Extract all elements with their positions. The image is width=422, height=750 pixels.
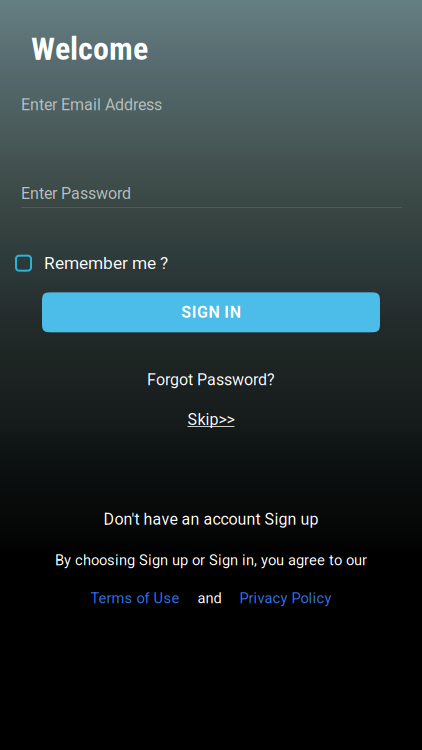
button[interactable]: SIGN IN: [42, 292, 380, 332]
button[interactable]: Don't have an account Sign up: [0, 510, 422, 529]
staticText: Skip>>: [187, 410, 234, 429]
staticText: Welcome: [31, 30, 148, 67]
staticText: Privacy Policy: [239, 590, 331, 607]
button[interactable]: Remember me ?: [0, 253, 422, 273]
button[interactable]: Enter Email Address: [0, 77, 422, 136]
button[interactable]: Enter Password: [0, 165, 422, 226]
button[interactable]: Forgot Password?: [0, 370, 422, 389]
staticText: SIGN IN: [181, 303, 241, 322]
staticText: Remember me ?: [44, 253, 168, 273]
staticText: By choosing Sign up or Sign in, you agre…: [55, 552, 367, 569]
staticText: and: [197, 590, 221, 607]
staticText: Forgot Password?: [147, 370, 275, 389]
button[interactable]: Terms of Use: [90, 590, 179, 607]
staticText: Enter Password: [21, 184, 131, 203]
button[interactable]: Privacy Policy: [239, 590, 331, 607]
staticText: Don't have an account Sign up: [103, 510, 318, 529]
staticText: Enter Email Address: [21, 95, 162, 114]
staticText: Terms of Use: [90, 590, 179, 607]
button[interactable]: Skip>>: [0, 410, 422, 429]
